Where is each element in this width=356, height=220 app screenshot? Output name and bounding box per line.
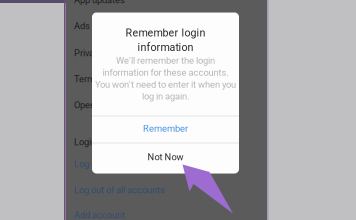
staticText: Terms [74, 73, 100, 84]
staticText: Not Now [147, 151, 183, 162]
staticText: information for these accounts. [102, 67, 228, 78]
button[interactable]: Privacy [66, 41, 267, 65]
button[interactable]: Log out [66, 152, 267, 176]
staticText: information [137, 41, 193, 53]
staticText: Login [74, 136, 96, 147]
button[interactable]: Log out of all accounts [66, 178, 267, 202]
staticText: Ads [74, 20, 90, 31]
staticText: Log out [74, 158, 104, 169]
staticText: log in again. [142, 91, 189, 102]
staticText: Remember login [125, 26, 205, 39]
staticText: We'll remember the login [116, 55, 215, 66]
staticText: Log out of all accounts [74, 184, 165, 195]
staticText: Add account [74, 209, 125, 220]
staticText: Privacy [74, 47, 103, 58]
button[interactable]: Not Now [92, 142, 239, 172]
staticText: Remember [143, 123, 188, 134]
staticText: Open source libraries [74, 99, 159, 110]
staticText: App updates [74, 0, 125, 5]
button[interactable]: Ads [66, 14, 267, 38]
button[interactable]: Login [66, 130, 267, 154]
button[interactable]: Remember [92, 115, 239, 142]
button[interactable]: Open source libraries [66, 93, 267, 117]
button[interactable]: Terms [66, 67, 267, 91]
button[interactable]: App updates [66, 0, 267, 12]
button[interactable]: Add account [66, 203, 267, 220]
staticText: You won't need to enter it when you [95, 79, 236, 90]
